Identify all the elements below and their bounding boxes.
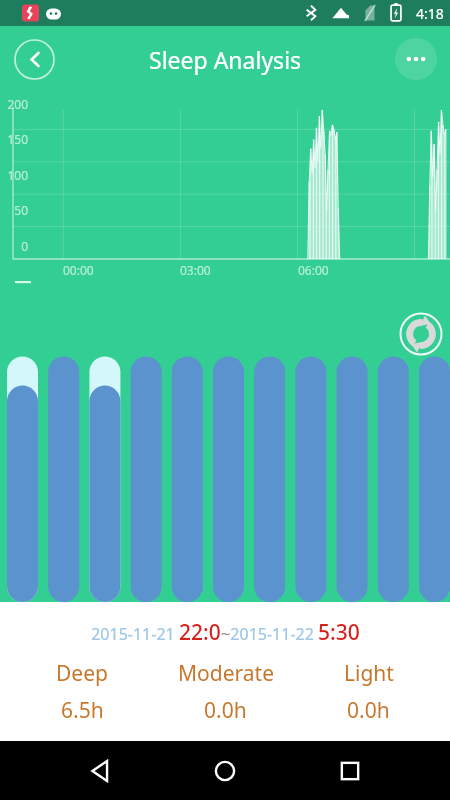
button[interactable]: Deep (10, 659, 154, 725)
staticText: Deep (56, 659, 108, 688)
button[interactable]: Home (201, 747, 249, 795)
staticText: 200 (0, 96, 28, 112)
staticText: 03:00 (180, 262, 211, 278)
staticText: 06:00 (298, 262, 329, 278)
staticText: Moderate (178, 659, 274, 688)
staticText: 150 (0, 131, 28, 147)
staticText: Light (344, 659, 394, 688)
button[interactable]: Back (14, 39, 55, 80)
button[interactable]: Refresh (399, 312, 443, 356)
button[interactable]: More options (395, 38, 437, 80)
staticText: 4:18 (416, 4, 444, 23)
button[interactable]: Light (297, 659, 440, 725)
staticText: 0 (0, 238, 28, 254)
staticText: Sleep Analysis (149, 44, 302, 75)
staticText: 0.0h (347, 696, 390, 725)
button[interactable]: Recents (326, 747, 374, 795)
button[interactable]: Moderate (154, 659, 297, 725)
staticText: 100 (0, 167, 28, 183)
staticText: 00:00 (63, 262, 94, 278)
staticText: 0.0h (204, 696, 247, 725)
button[interactable]: Back (77, 747, 125, 795)
staticText: 2015-11-21 22:0~2015-11-22 5:30 (91, 618, 360, 647)
staticText: 6.5h (61, 696, 104, 725)
staticText: 50 (0, 202, 28, 218)
